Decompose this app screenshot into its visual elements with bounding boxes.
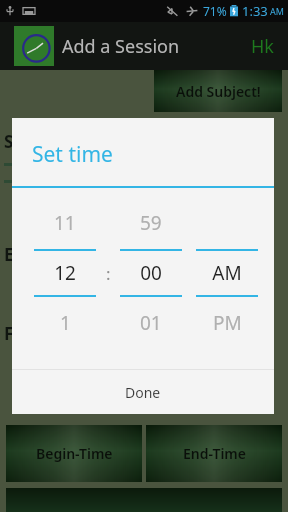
staticText: AM xyxy=(270,5,284,17)
button[interactable]: 11 xyxy=(34,203,96,243)
button[interactable]: 12 xyxy=(34,251,96,295)
button[interactable]: PM xyxy=(196,303,258,343)
staticText: 12 xyxy=(54,260,76,286)
staticText: E xyxy=(4,243,14,266)
button[interactable]: AM xyxy=(196,251,258,295)
staticText: Set time xyxy=(32,140,113,169)
button[interactable]: Done xyxy=(12,370,274,414)
staticText: Add a Session xyxy=(62,34,180,59)
staticText: Add Subject! xyxy=(176,82,261,101)
staticText: Begin-Time xyxy=(36,444,113,463)
staticText: Hk xyxy=(251,34,274,59)
staticText: 1 xyxy=(60,310,71,336)
staticText: S xyxy=(4,130,14,153)
staticText: 71% xyxy=(203,3,227,19)
staticText: End-Time xyxy=(183,444,246,463)
staticText: Done xyxy=(125,383,161,402)
button[interactable]: Add Subject! xyxy=(154,70,282,112)
staticText: 01 xyxy=(140,310,162,336)
staticText: PM xyxy=(213,310,242,336)
button[interactable]: App icon xyxy=(14,26,54,66)
button[interactable]: Begin-Time xyxy=(6,425,142,482)
staticText: : xyxy=(106,262,111,285)
button[interactable]: 01 xyxy=(120,303,182,343)
button[interactable]: 00 xyxy=(120,251,182,295)
button[interactable]: 59 xyxy=(120,203,182,243)
button[interactable]: End-Time xyxy=(146,425,282,482)
staticText: 11 xyxy=(54,210,76,236)
button[interactable]: 1 xyxy=(34,303,96,343)
staticText: F xyxy=(4,322,14,345)
staticText: AM xyxy=(212,260,242,286)
staticText: 1:33 xyxy=(242,2,268,20)
staticText: 00 xyxy=(140,260,162,286)
staticText: 59 xyxy=(140,210,162,236)
button[interactable]: Hk xyxy=(237,34,288,59)
